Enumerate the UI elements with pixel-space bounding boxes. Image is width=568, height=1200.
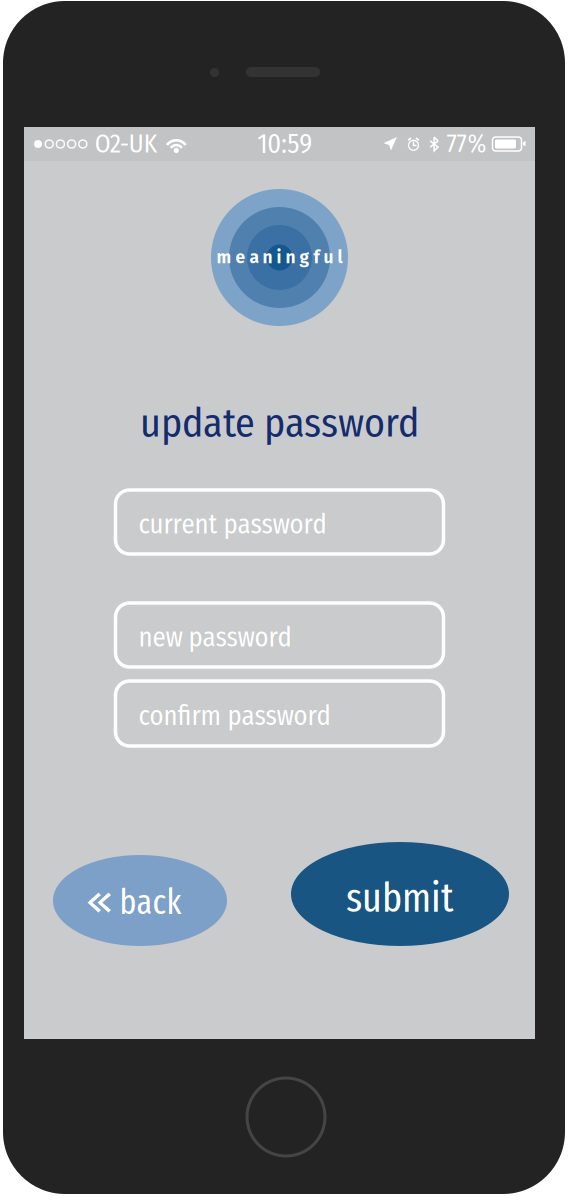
button[interactable]: new password [115,603,443,667]
staticText: back [119,882,181,923]
button[interactable]: submit [291,842,509,946]
staticText: 77% [446,129,486,159]
button[interactable]: confirm password [115,681,443,746]
button[interactable]: current password [115,490,443,554]
staticText: m e a n i n g f u l [216,247,342,268]
staticText: update password [140,399,419,447]
staticText: O2-UK [95,129,157,159]
staticText: new password [138,621,291,653]
staticText: current password [138,508,326,540]
button[interactable]: back [53,855,227,946]
staticText: confirm password [138,700,330,732]
staticText: submit [346,873,454,923]
staticText: 10:59 [257,128,312,160]
